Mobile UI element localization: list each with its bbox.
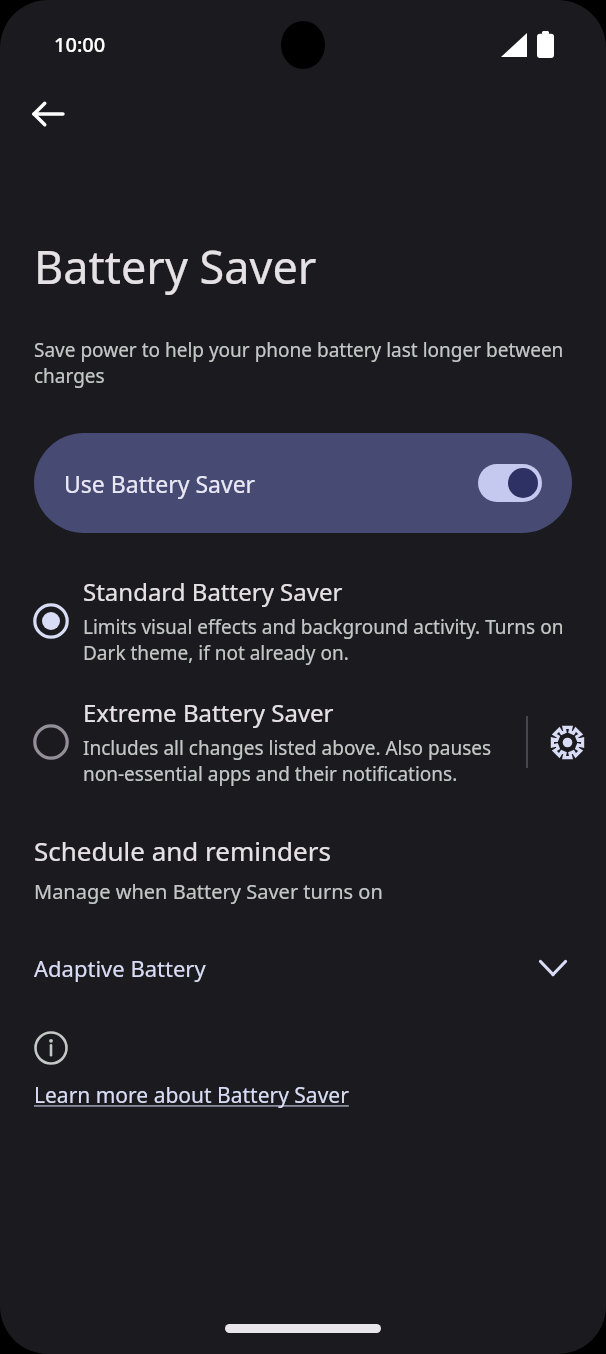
button[interactable]: Standard Battery Saver	[0, 575, 606, 666]
staticText: Adaptive Battery	[34, 953, 534, 983]
button[interactable]: Back	[22, 88, 74, 140]
staticText: Extreme Battery Saver	[83, 696, 334, 729]
staticText: Includes all changes listed above. Also …	[83, 735, 510, 787]
staticText: Battery Saver	[34, 236, 317, 297]
button[interactable]: Use Battery Saver	[34, 433, 572, 533]
button[interactable]: Adaptive Battery	[0, 943, 606, 993]
staticText: Save power to help your phone battery la…	[34, 337, 572, 389]
staticText: Use Battery Saver	[64, 468, 478, 499]
staticText: Schedule and reminders	[34, 833, 331, 868]
staticText: Limits visual effects and background act…	[83, 614, 572, 666]
staticText: Learn more about Battery Saver	[34, 1081, 349, 1110]
staticText: 10:00	[54, 31, 106, 58]
button[interactable]: Extreme Battery Saver	[0, 696, 526, 787]
button[interactable]: Extreme Battery Saver settings	[528, 705, 606, 779]
button[interactable]: Learn more about Battery Saver	[34, 1081, 349, 1110]
staticText: Standard Battery Saver	[83, 575, 343, 608]
staticText: Manage when Battery Saver turns on	[34, 878, 383, 905]
